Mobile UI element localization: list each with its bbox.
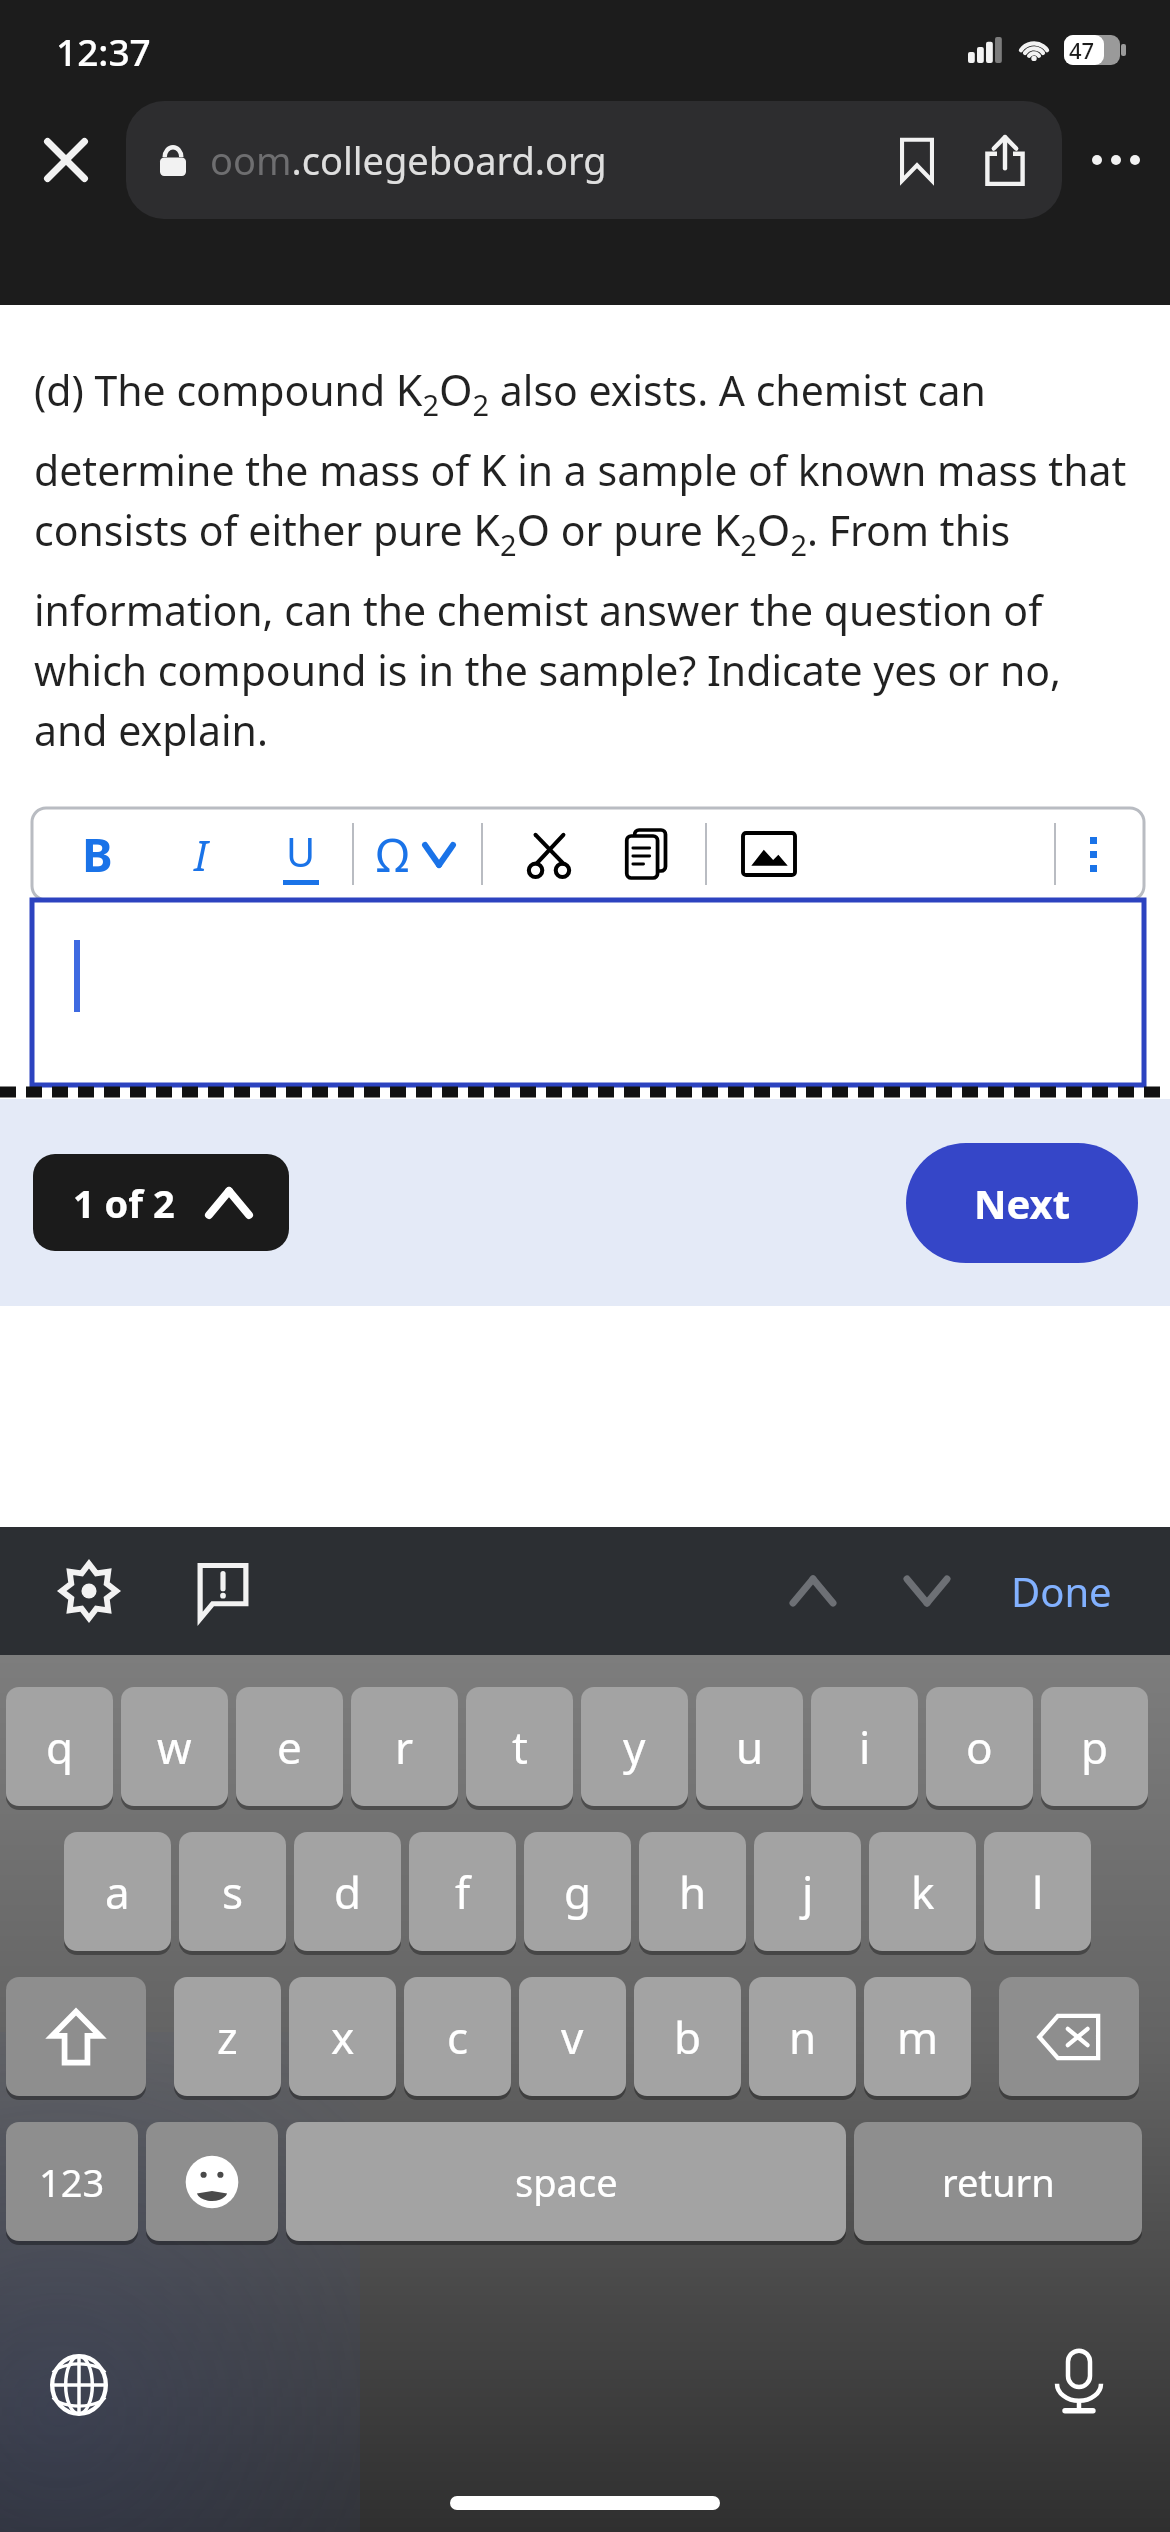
button[interactable]: Close [20, 114, 112, 206]
button[interactable]: m [864, 1977, 971, 2100]
button[interactable]: Done [997, 1554, 1126, 1628]
staticText: (d) The compound K2O2 also exists. A che… [34, 360, 1138, 758]
button[interactable]: a [64, 1832, 171, 1955]
button[interactable]: z [174, 1977, 281, 2100]
staticText: e [277, 1717, 302, 1777]
button[interactable]: e [236, 1687, 343, 1810]
button[interactable]: x [289, 1977, 396, 2100]
staticText: 12:37 [56, 26, 151, 76]
button[interactable]: c [404, 1977, 511, 2100]
button[interactable]: Change keyboard [40, 2346, 118, 2424]
staticText: p [1081, 1717, 1109, 1777]
button[interactable]: r [351, 1687, 458, 1810]
button[interactable]: b [634, 1977, 741, 2100]
button[interactable]: Share [968, 123, 1042, 197]
button[interactable]: Backspace [999, 1977, 1139, 2100]
button[interactable]: Next [906, 1143, 1138, 1263]
button[interactable]: oom.collegeboard.org [126, 101, 1062, 219]
button[interactable]: g [524, 1832, 631, 1955]
button[interactable]: I [166, 819, 236, 889]
button[interactable]: Insert image [733, 818, 805, 890]
button[interactable]: k [869, 1832, 976, 1955]
button[interactable]: y [581, 1687, 688, 1810]
staticText: d [334, 1862, 362, 1922]
button[interactable]: Copy [611, 818, 683, 890]
button[interactable]: Voice input [1040, 2342, 1118, 2420]
staticText: Next [974, 1176, 1071, 1230]
staticText: w [157, 1717, 192, 1777]
staticText: 123 [39, 2156, 105, 2208]
staticText: b [674, 2007, 702, 2067]
button[interactable]: Settings [52, 1554, 126, 1628]
button[interactable]: s [179, 1832, 286, 1955]
button[interactable]: Next field [887, 1551, 967, 1631]
staticText: Done [1011, 1564, 1112, 1618]
staticText: U [286, 824, 316, 878]
staticText: l [1032, 1862, 1044, 1922]
button[interactable]: d [294, 1832, 401, 1955]
staticText: B [82, 823, 113, 886]
staticText: g [564, 1862, 592, 1922]
staticText: u [736, 1717, 764, 1777]
button[interactable]: More options [1070, 114, 1162, 206]
staticText: 47 [1069, 35, 1095, 65]
button[interactable]: Insert symbol [376, 823, 453, 886]
staticText: return [942, 2156, 1055, 2208]
button[interactable]: Previous field [773, 1551, 853, 1631]
button[interactable]: Shift [6, 1977, 146, 2100]
staticText: 1 of 2 [73, 1177, 175, 1229]
button[interactable]: w [121, 1687, 228, 1810]
staticText: n [789, 2007, 817, 2067]
staticText: k [911, 1862, 935, 1922]
button[interactable]: Cut [513, 818, 585, 890]
staticText: Ω [376, 823, 409, 886]
staticText: x [331, 2007, 355, 2067]
button[interactable]: U [266, 819, 336, 889]
button[interactable]: Report issue [186, 1554, 260, 1628]
staticText: m [897, 2007, 939, 2067]
button[interactable]: i [811, 1687, 918, 1810]
staticText: j [802, 1862, 814, 1922]
staticText: f [455, 1862, 471, 1922]
staticText: c [447, 2007, 469, 2067]
staticText: s [222, 1862, 244, 1922]
button[interactable]: B [62, 819, 132, 889]
staticText: space [515, 2156, 618, 2208]
button[interactable]: space [286, 2122, 846, 2245]
staticText: h [679, 1862, 707, 1922]
staticText: z [217, 2007, 238, 2067]
staticText: a [105, 1862, 130, 1922]
button[interactable]: n [749, 1977, 856, 2100]
staticText: t [512, 1717, 528, 1777]
button[interactable]: o [926, 1687, 1033, 1810]
button[interactable]: More [1056, 817, 1130, 891]
staticText: v [561, 2007, 584, 2067]
button[interactable]: 1 of 2 [33, 1154, 289, 1251]
staticText: i [859, 1717, 871, 1777]
button[interactable]: f [409, 1832, 516, 1955]
staticText: o [966, 1717, 993, 1777]
button[interactable]: u [696, 1687, 803, 1810]
button[interactable]: 123 [6, 2122, 138, 2245]
staticText: I [194, 826, 208, 883]
button[interactable]: h [639, 1832, 746, 1955]
button[interactable]: Bookmark [880, 123, 954, 197]
button[interactable]: t [466, 1687, 573, 1810]
button[interactable]: Emoji [146, 2122, 278, 2245]
button[interactable]: q [6, 1687, 113, 1810]
button[interactable]: l [984, 1832, 1091, 1955]
staticText: q [46, 1717, 74, 1777]
staticText: y [623, 1717, 646, 1777]
button[interactable]: j [754, 1832, 861, 1955]
button[interactable]: v [519, 1977, 626, 2100]
button[interactable] [32, 900, 1144, 1085]
staticText: r [395, 1717, 414, 1777]
button[interactable]: return [854, 2122, 1142, 2245]
staticText: oom.collegeboard.org [210, 134, 607, 186]
button[interactable]: p [1041, 1687, 1148, 1810]
